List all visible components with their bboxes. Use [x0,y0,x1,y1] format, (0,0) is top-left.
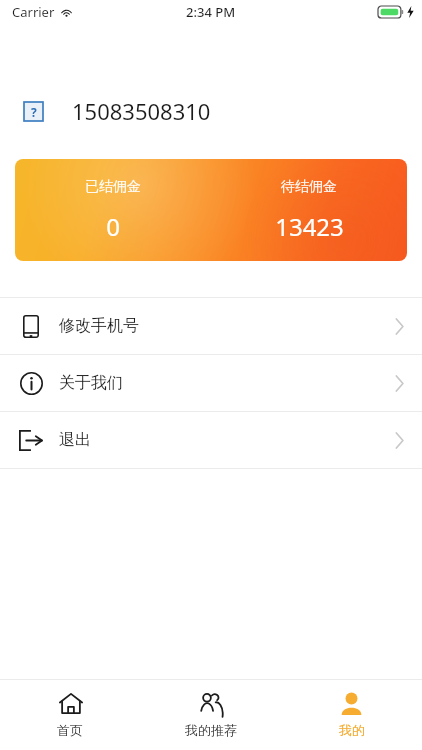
button[interactable]: Change phone number [0,298,422,354]
button[interactable]: 首页 [0,680,140,750]
staticText: 关于我们 [59,373,123,393]
button[interactable]: 已结佣金 [15,159,407,261]
staticText: 13423 [275,210,344,243]
staticText: 修改手机号 [59,316,139,336]
button[interactable]: About us [0,355,422,411]
button[interactable]: 我的推荐 [140,680,281,750]
staticText: 0 [106,210,120,243]
staticText: 2:34 PM [186,3,236,21]
other: Log out [18,427,44,453]
staticText: ? [31,104,37,120]
staticText: 我的 [339,722,365,738]
button[interactable]: Log out [0,412,422,468]
staticText: 15083508310 [72,96,211,126]
other: About us [18,370,44,396]
staticText: 待结佣金 [281,178,337,196]
staticText: 我的推荐 [185,722,237,738]
other: Change phone number [18,313,44,339]
staticText: 首页 [57,722,83,738]
staticText: 退出 [59,430,91,450]
staticText: Carrier [12,3,55,21]
button[interactable]: 我的 [281,680,422,750]
staticText: 已结佣金 [85,178,141,196]
